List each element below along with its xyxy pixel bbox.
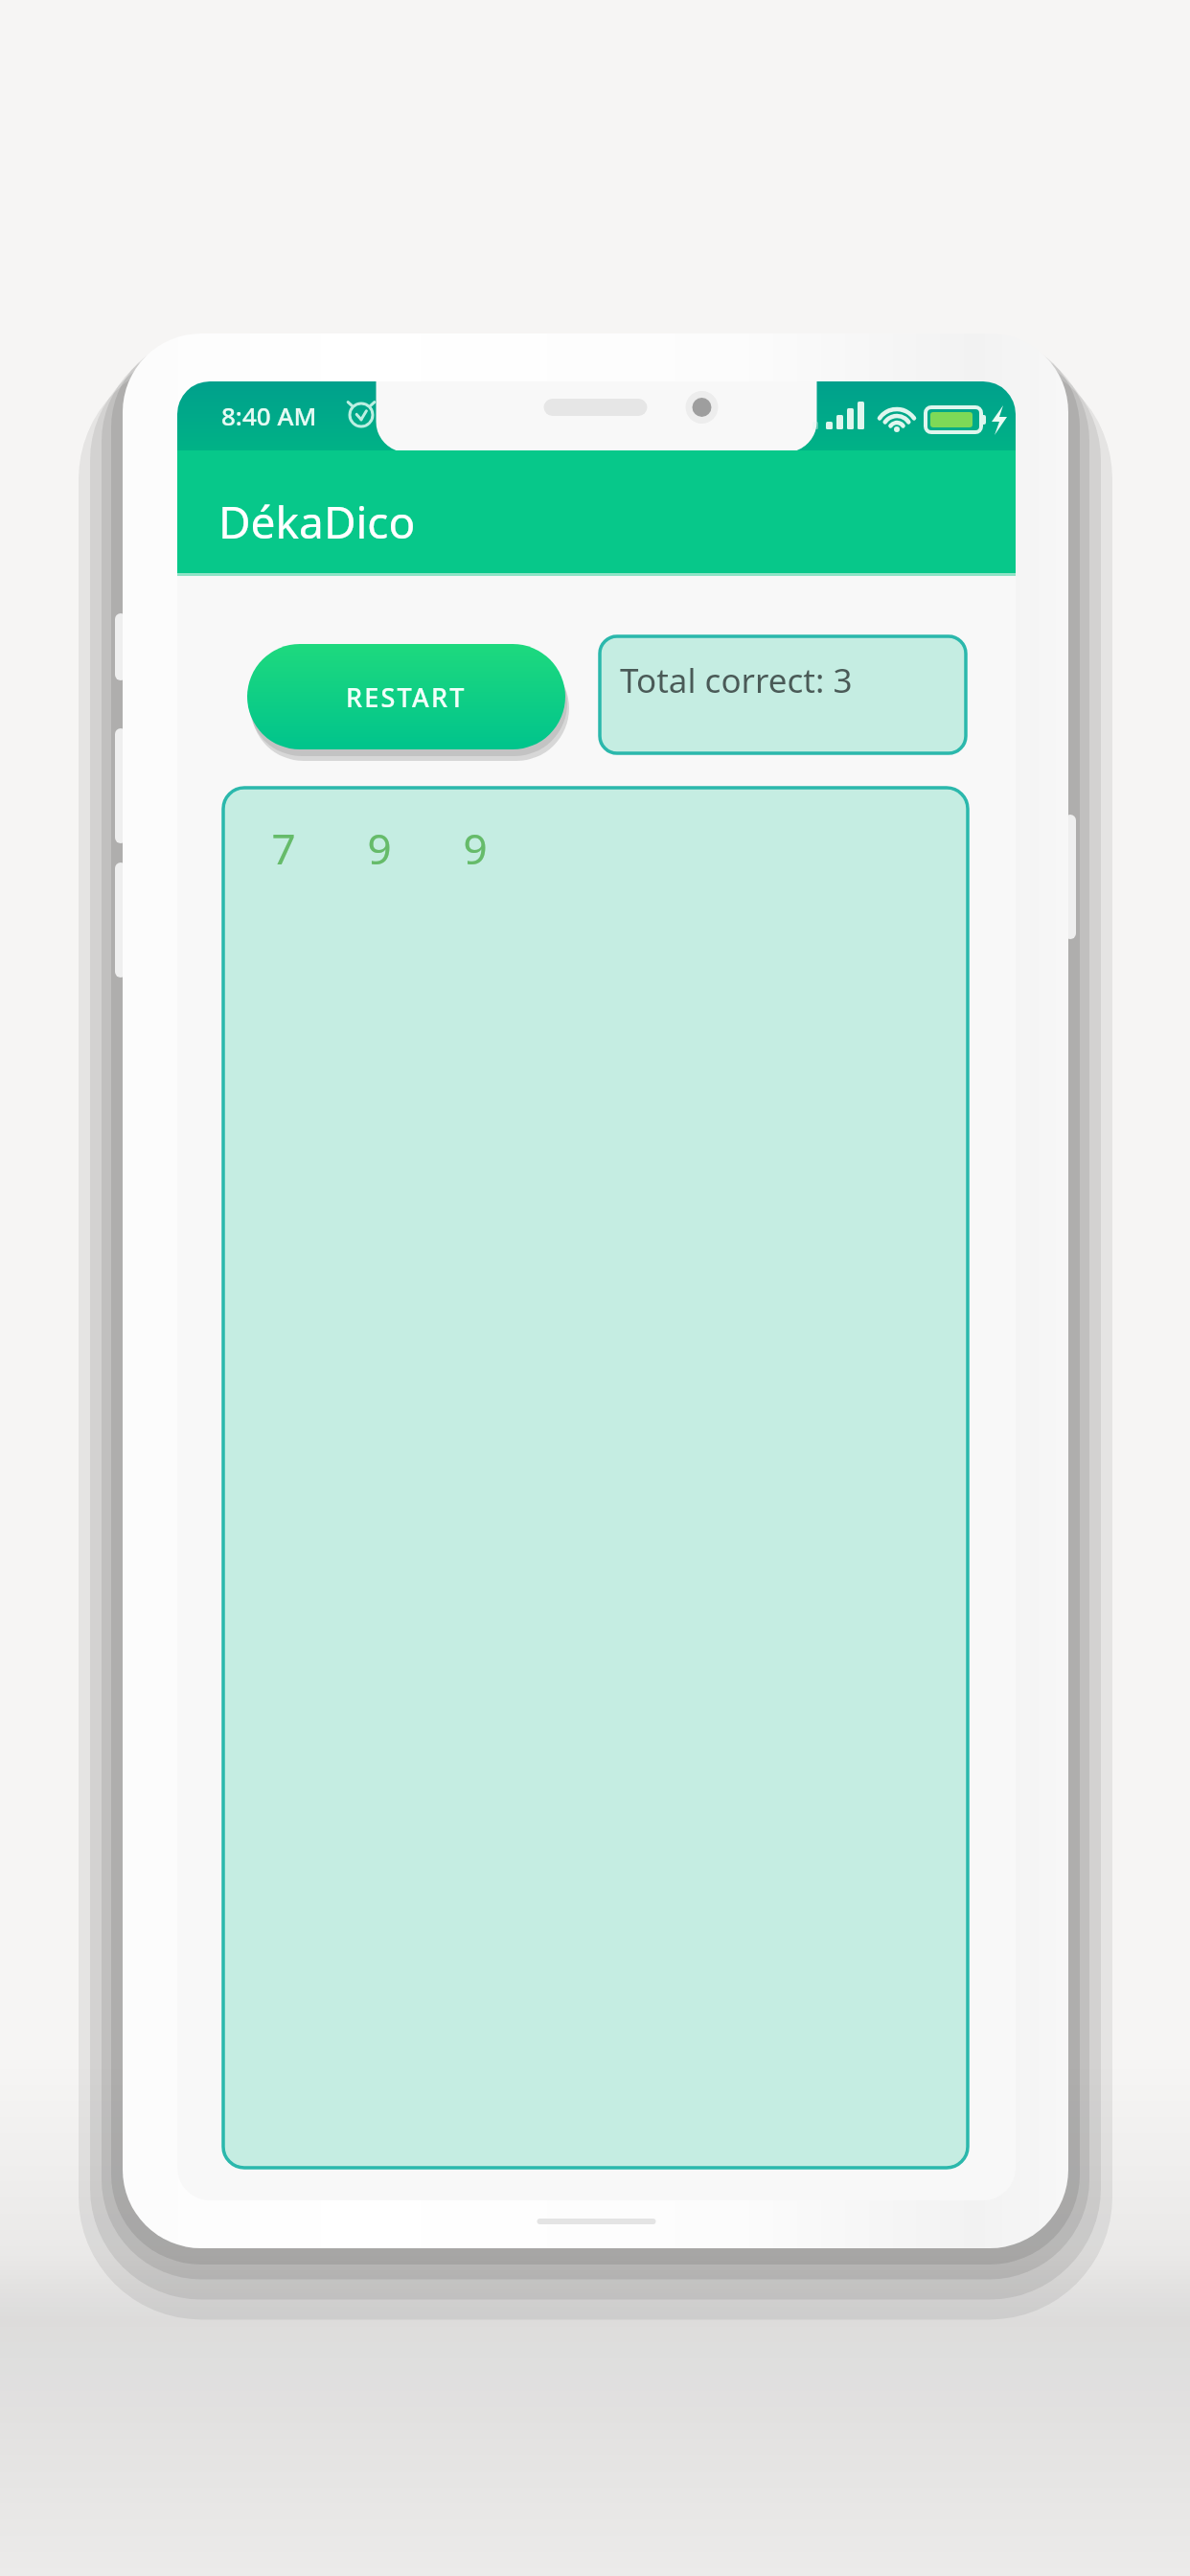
button[interactable]: Total correct: 3 — [600, 636, 966, 753]
staticText: DékaDico — [218, 492, 416, 552]
staticText: Total correct: 3 — [620, 657, 853, 703]
staticText: 9 — [463, 819, 488, 877]
staticText: 7 — [271, 819, 296, 877]
staticText: 8:40 AM — [221, 399, 317, 432]
staticText: 9 — [367, 819, 392, 877]
other: Answers list — [223, 788, 968, 2168]
button[interactable]: RESTART — [247, 644, 565, 749]
staticText: RESTART — [346, 679, 467, 715]
